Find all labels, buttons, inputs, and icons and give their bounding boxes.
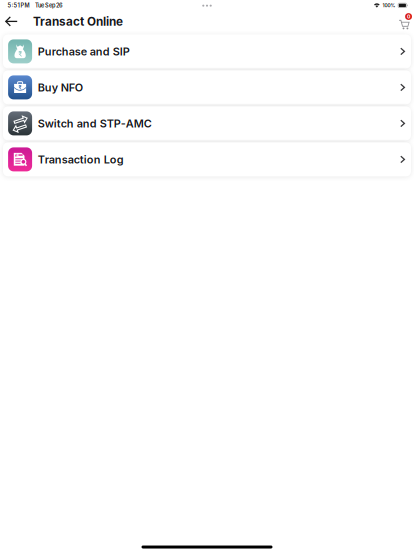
button[interactable]: Purchase and SIP	[3, 34, 411, 68]
button[interactable]: Buy NFO	[3, 70, 411, 104]
staticText: 100%	[382, 2, 395, 8]
button[interactable]: Cart	[399, 13, 414, 30]
staticText: 0	[407, 13, 410, 20]
button[interactable]: Transaction Log	[3, 142, 411, 176]
staticText: Transaction Log	[38, 153, 124, 166]
staticText: Purchase and SIP	[38, 45, 130, 58]
staticText: Switch and STP-AMC	[38, 117, 152, 130]
button[interactable]: Back	[2, 9, 20, 33]
staticText: Transact Online	[33, 14, 123, 28]
staticText: Buy NFO	[38, 81, 83, 94]
button[interactable]: Switch and STP-AMC	[3, 106, 411, 140]
staticText: 5:51 PM	[7, 2, 29, 9]
staticText: Tue Sep 26	[35, 2, 63, 9]
